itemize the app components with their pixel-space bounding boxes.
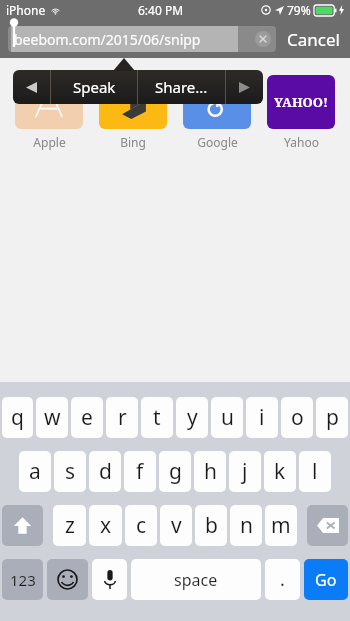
button[interactable]: Google	[182, 75, 252, 150]
staticText: Cancel	[287, 28, 340, 51]
staticText: Bing	[120, 134, 146, 150]
staticText: b	[205, 511, 218, 540]
staticText: p	[326, 403, 339, 432]
staticText: y	[187, 403, 198, 432]
button[interactable]: Cancel	[285, 28, 342, 51]
button[interactable]: r	[106, 397, 138, 438]
button[interactable]: Emoji	[47, 559, 88, 600]
staticText: e	[81, 403, 93, 432]
button[interactable]: g	[159, 451, 191, 492]
button[interactable]: YAHOO!	[266, 75, 336, 150]
staticText: m	[271, 511, 291, 540]
staticText: x	[100, 511, 112, 540]
staticText: t	[153, 403, 161, 432]
staticText: j	[242, 457, 248, 486]
button[interactable]: Dictation	[92, 559, 127, 600]
button[interactable]: k	[264, 451, 296, 492]
button[interactable]: a	[19, 451, 51, 492]
button[interactable]: v	[160, 505, 192, 546]
staticText: u	[221, 403, 234, 432]
staticText: 123	[10, 570, 36, 590]
staticText: f	[136, 457, 144, 486]
staticText: v	[171, 511, 182, 540]
button[interactable]: Previous	[13, 70, 50, 104]
staticText: Share...	[155, 77, 208, 97]
button[interactable]: Clear text	[255, 31, 271, 47]
staticText: w	[44, 403, 61, 432]
staticText: 79%	[287, 2, 311, 18]
staticText: q	[11, 403, 24, 432]
button[interactable]: y	[176, 397, 208, 438]
button[interactable]: Bing	[98, 75, 168, 150]
button[interactable]: beebom.com/2015/06/snipp	[8, 26, 276, 52]
button[interactable]: f	[124, 451, 156, 492]
staticText: 6:40 PM	[138, 2, 184, 18]
button[interactable]: Apple	[14, 75, 84, 150]
staticText: h	[204, 457, 217, 486]
button[interactable]: j	[229, 451, 261, 492]
button[interactable]: space	[131, 559, 261, 600]
button[interactable]: m	[265, 505, 297, 546]
button[interactable]: Delete	[307, 505, 348, 546]
staticText: n	[240, 511, 253, 540]
staticText: iPhone	[6, 2, 46, 18]
button[interactable]: b	[195, 505, 227, 546]
staticText: o	[291, 403, 304, 432]
button[interactable]: h	[194, 451, 226, 492]
button[interactable]: 123	[2, 559, 43, 600]
button[interactable]: Next	[226, 70, 263, 104]
staticText: YAHOO!	[274, 93, 328, 111]
staticText: Speak	[73, 77, 116, 97]
button[interactable]: q	[2, 397, 33, 438]
staticText: Google	[197, 134, 238, 150]
button[interactable]: Go	[304, 559, 348, 600]
button[interactable]: u	[211, 397, 243, 438]
button[interactable]: z	[53, 505, 86, 546]
staticText: .	[280, 567, 285, 592]
button[interactable]: e	[71, 397, 103, 438]
staticText: i	[259, 403, 265, 432]
button[interactable]: d	[89, 451, 121, 492]
button[interactable]: Share...	[138, 70, 225, 104]
button[interactable]: l	[299, 451, 331, 492]
button[interactable]: x	[89, 505, 122, 546]
staticText: s	[65, 457, 76, 486]
button[interactable]: Speak	[51, 70, 137, 104]
staticText: k	[274, 457, 286, 486]
button[interactable]: w	[36, 397, 68, 438]
staticText: Yahoo	[284, 134, 319, 150]
button[interactable]: i	[246, 397, 278, 438]
staticText: r	[118, 403, 127, 432]
staticText: a	[29, 457, 41, 486]
staticText: g	[169, 457, 182, 486]
staticText: beebom.com/2015/06/snipp	[14, 30, 201, 49]
staticText: z	[65, 511, 75, 540]
button[interactable]: .	[265, 559, 300, 600]
button[interactable]: o	[281, 397, 313, 438]
staticText: d	[99, 457, 112, 486]
button[interactable]: c	[125, 505, 157, 546]
staticText: space	[174, 569, 218, 591]
staticText: c	[136, 511, 147, 540]
button[interactable]: Shift	[2, 505, 43, 546]
staticText: l	[312, 457, 318, 486]
button[interactable]: t	[141, 397, 173, 438]
staticText: Apple	[33, 134, 66, 150]
staticText: Go	[315, 569, 337, 591]
button[interactable]: s	[54, 451, 86, 492]
button[interactable]: p	[316, 397, 348, 438]
button[interactable]: n	[230, 505, 262, 546]
